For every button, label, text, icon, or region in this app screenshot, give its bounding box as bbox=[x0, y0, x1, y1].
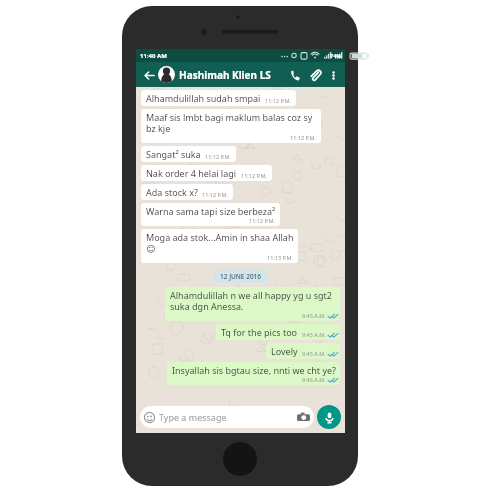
staticText: Alhamdulillah sudah smpai bbox=[146, 92, 261, 104]
staticText: 12 JUNE 2016 bbox=[220, 272, 262, 281]
staticText: 9:46 A.M. bbox=[302, 376, 326, 383]
button[interactable]: Contact photo bbox=[158, 66, 175, 83]
button[interactable]: Back bbox=[141, 67, 157, 83]
staticText: Lovely bbox=[271, 345, 298, 357]
staticText: Type a message bbox=[159, 411, 297, 423]
button[interactable]: Alhamdulillah sudah smpai bbox=[141, 90, 296, 106]
staticText: 9:45 A.M. bbox=[302, 350, 326, 357]
staticText: Tq for the pics too bbox=[221, 326, 298, 338]
button[interactable]: Home bbox=[223, 442, 257, 476]
button[interactable]: Ada stock x? bbox=[141, 184, 233, 200]
button[interactable]: Voice message bbox=[317, 405, 341, 429]
button[interactable]: Warna sama tapi size berbeza² bbox=[141, 203, 280, 226]
button[interactable]: Type a message bbox=[140, 406, 314, 428]
staticText: 9:45 A.M. bbox=[302, 312, 326, 319]
staticText: Insyallah sis bgtau size, nnti we cht ye… bbox=[172, 364, 336, 376]
staticText: Maaf sis lmbt bagi maklum balas coz sy b… bbox=[146, 111, 317, 134]
staticText: 9:45 A.M. bbox=[302, 331, 326, 338]
staticText: 11:12 P.M. bbox=[202, 191, 229, 198]
staticText: 11:12 P.M. bbox=[249, 217, 276, 224]
staticText: 11:12 P.M. bbox=[205, 153, 232, 160]
staticText: 11:12 P.M. bbox=[241, 172, 268, 179]
button[interactable]: Nak order 4 helai lagi bbox=[141, 165, 272, 181]
button[interactable]: Camera bbox=[297, 412, 310, 422]
button[interactable]: Attach bbox=[306, 66, 324, 84]
staticText: 11:13 P.M. bbox=[267, 254, 294, 261]
button[interactable]: Sangat² suka bbox=[141, 146, 236, 162]
button[interactable]: Moga ada stok...Amin in shaa Allah ☺ bbox=[141, 229, 298, 263]
staticText: Sangat² suka bbox=[146, 148, 201, 160]
button[interactable]: Alhamdulillah n we all happy yg u sgt2 s… bbox=[165, 287, 340, 321]
button[interactable]: Insyallah sis bgtau size, nnti we cht ye… bbox=[167, 362, 340, 385]
staticText: Nak order 4 helai lagi bbox=[146, 167, 237, 179]
staticText: 74% bbox=[330, 52, 342, 59]
staticText: Warna sama tapi size berbeza² bbox=[146, 205, 276, 217]
staticText: 11:12 P.M. bbox=[290, 134, 317, 141]
staticText: Alhamdulillah n we all happy yg u sgt2 s… bbox=[170, 289, 336, 312]
button[interactable]: Call bbox=[286, 66, 304, 84]
button[interactable]: More options bbox=[326, 68, 340, 82]
staticText: Ada stock x? bbox=[146, 186, 198, 198]
button[interactable]: Maaf sis lmbt bagi maklum balas coz sy b… bbox=[141, 109, 321, 143]
staticText: 11:12 P.M. bbox=[265, 97, 292, 104]
button[interactable]: Lovely bbox=[266, 343, 340, 359]
button[interactable]: Tq for the pics too bbox=[216, 324, 340, 340]
staticText: 11:40 AM bbox=[140, 52, 167, 60]
staticText: Moga ada stok...Amin in shaa Allah ☺ bbox=[146, 231, 294, 254]
staticText: Hashimah Klien LS bbox=[179, 68, 286, 82]
